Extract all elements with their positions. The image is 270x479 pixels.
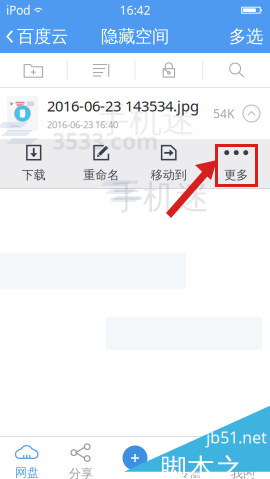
- staticText: 2016-06-23 16:40: [47, 118, 118, 131]
- staticText: 手机迷: [110, 177, 209, 218]
- staticText: 54K: [213, 105, 234, 121]
- staticText: jb51.net: [206, 427, 267, 448]
- staticText: 16:42: [119, 2, 150, 18]
- button[interactable]: 更多: [202, 139, 270, 188]
- button[interactable]: 重命名: [67, 139, 135, 188]
- staticText: 下载: [22, 168, 46, 182]
- staticText: 更多: [224, 168, 248, 182]
- staticText: 百度云: [17, 26, 68, 47]
- button[interactable]: 下载: [0, 139, 67, 188]
- button[interactable]: Lock: [135, 53, 202, 87]
- staticText: 传输: [177, 465, 201, 479]
- button[interactable]: 多选: [221, 21, 270, 52]
- button[interactable]: Sort: [68, 53, 135, 87]
- staticText: 重命名: [83, 168, 119, 182]
- staticText: 我的: [231, 466, 255, 479]
- button[interactable]: 移动到: [135, 139, 202, 188]
- staticText: 2016-06-23 143534.jpg: [47, 96, 199, 116]
- button[interactable]: 分享: [54, 437, 108, 479]
- staticText: 3533.com: [52, 126, 158, 156]
- staticText: 手机迷: [96, 100, 195, 141]
- button[interactable]: 百度云: [0, 21, 74, 52]
- staticText: 隐藏空间: [101, 26, 169, 47]
- button[interactable]: Upload: [108, 437, 162, 479]
- button[interactable]: 传输: [162, 437, 216, 479]
- staticText: 脚本之家: [159, 449, 269, 479]
- staticText: 多选: [229, 26, 263, 47]
- staticText: 移动到: [151, 168, 187, 182]
- button[interactable]: 我的: [216, 437, 270, 479]
- staticText: 分享: [69, 466, 93, 479]
- button[interactable]: 2016-06-23 143534.jpg: [0, 88, 270, 139]
- button[interactable]: 网盘: [0, 437, 54, 479]
- staticText: 网盘: [15, 465, 39, 479]
- button[interactable]: New folder: [0, 53, 67, 87]
- staticText: iPod: [6, 2, 30, 18]
- button[interactable]: Search: [203, 53, 270, 87]
